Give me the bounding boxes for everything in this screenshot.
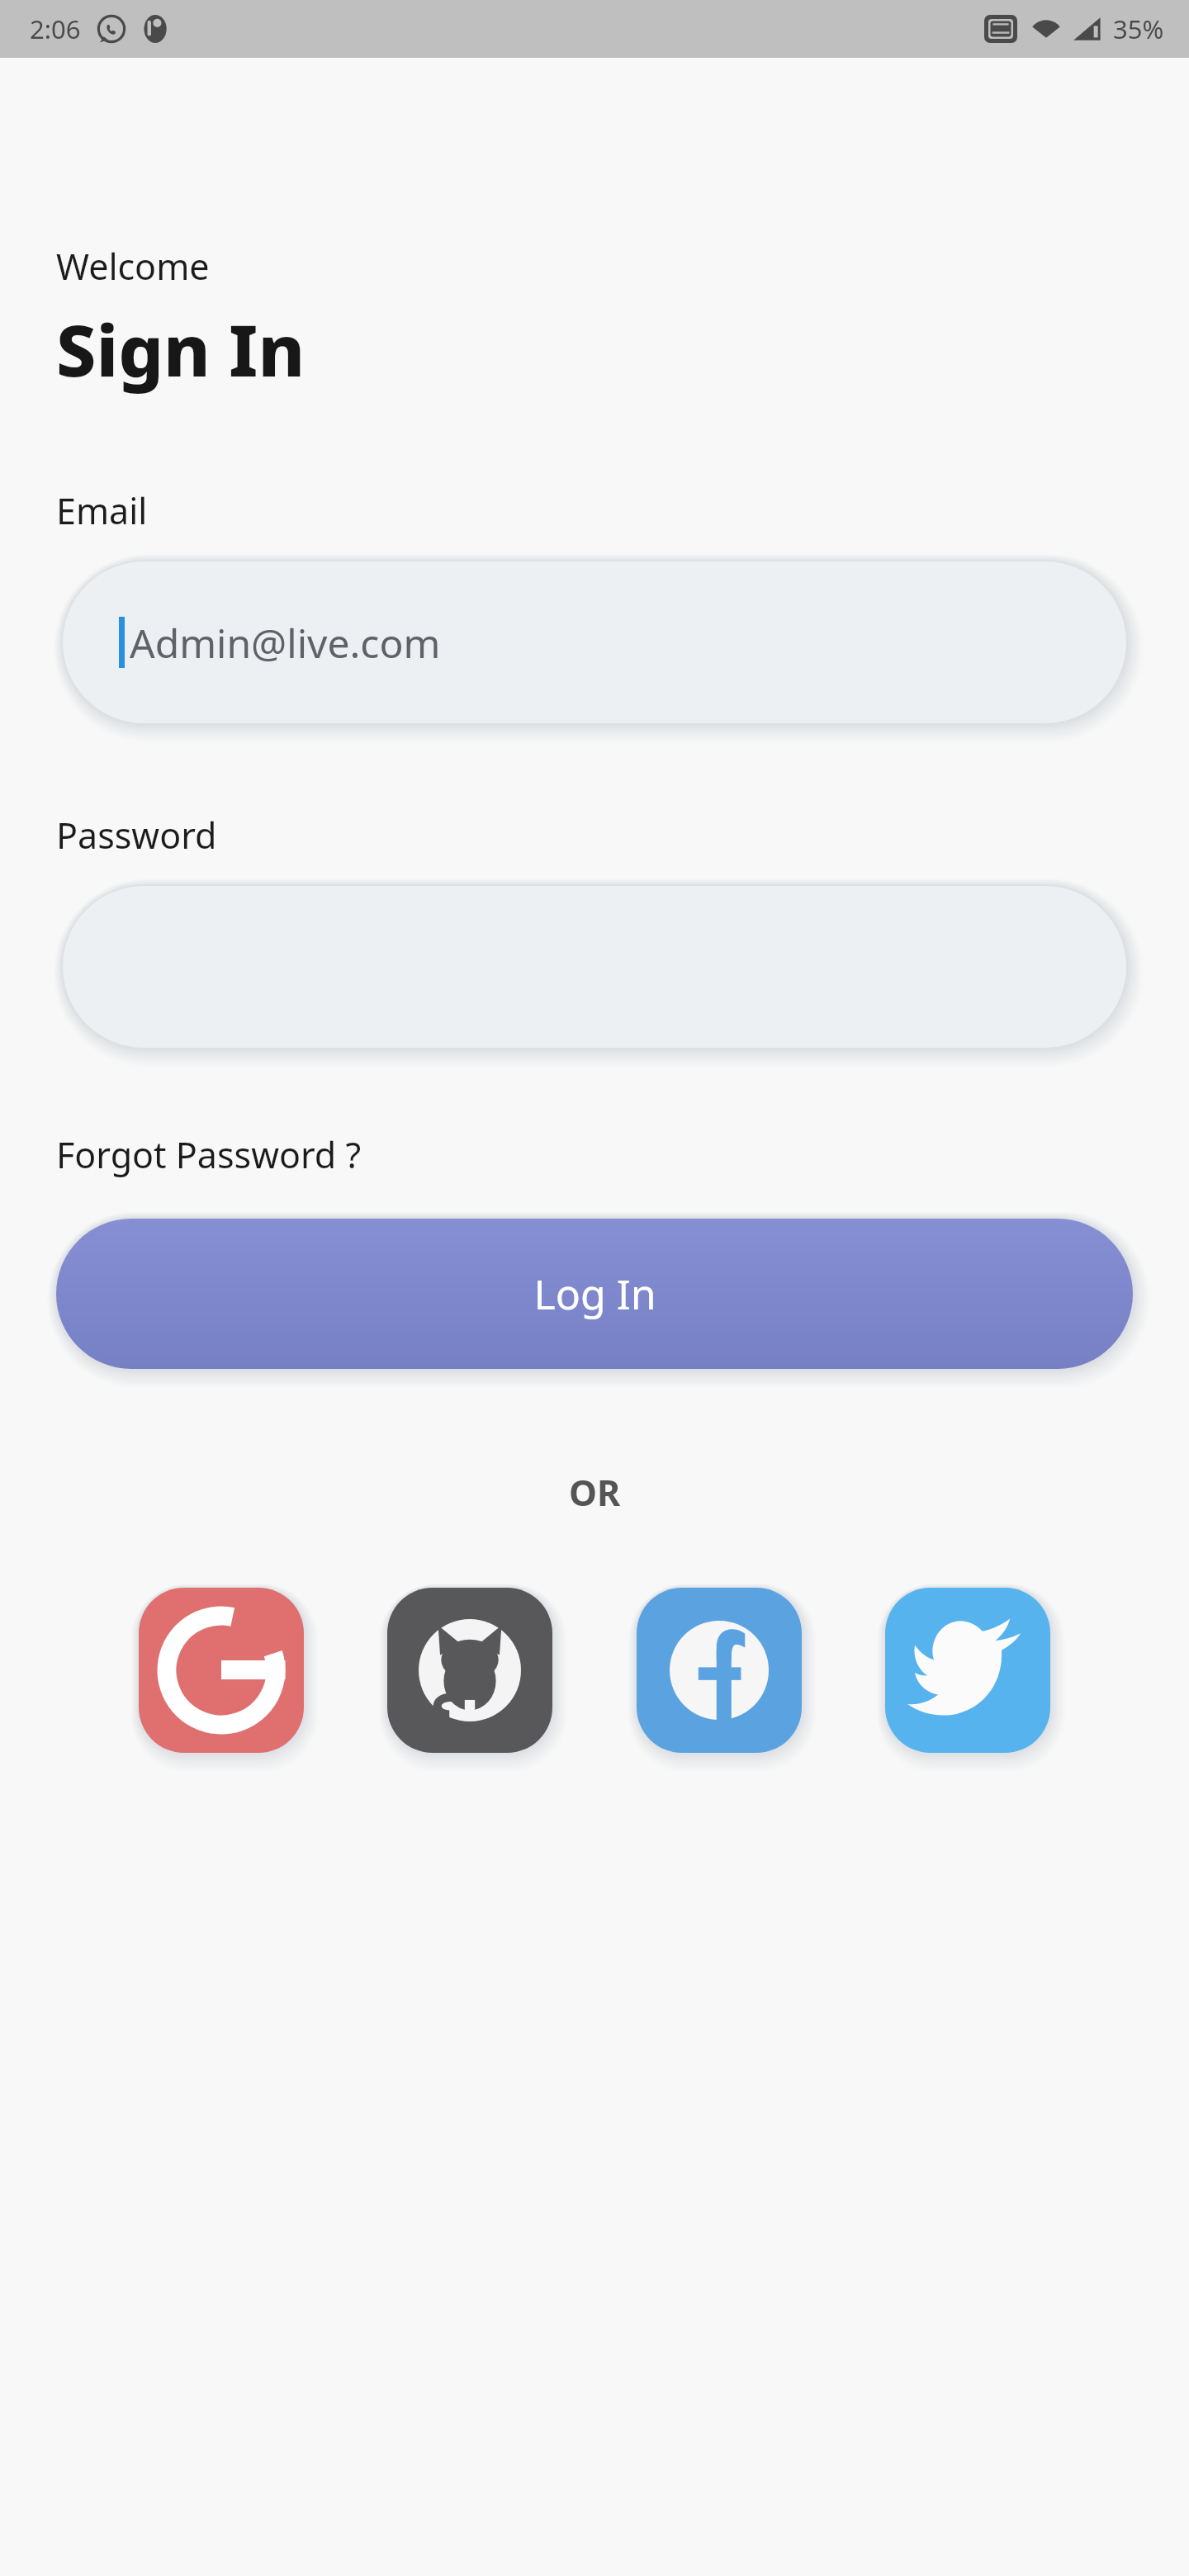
staticText: Welcome	[56, 242, 210, 291]
button[interactable]: Sign in with Google	[139, 1588, 304, 1753]
staticText: Forgot Password ?	[56, 1130, 362, 1179]
button[interactable]: Admin@live.com	[63, 561, 1126, 723]
button[interactable]: Sign in with GitHub	[387, 1588, 552, 1753]
staticText: Admin@live.com	[130, 616, 441, 670]
staticText: Password	[56, 811, 217, 859]
button[interactable]: Sign in with Facebook	[637, 1588, 802, 1753]
button[interactable]: Log In	[56, 1219, 1133, 1369]
staticText: Sign In	[56, 301, 306, 397]
staticText: 2:06	[30, 12, 81, 46]
staticText: 35%	[1113, 12, 1164, 46]
staticText: Log In	[533, 1266, 656, 1322]
staticText: OR	[0, 1468, 1189, 1517]
button[interactable]: Forgot Password ?	[56, 1130, 362, 1179]
staticText: Email	[56, 486, 148, 535]
button[interactable]: Sign in with Twitter	[885, 1588, 1050, 1753]
